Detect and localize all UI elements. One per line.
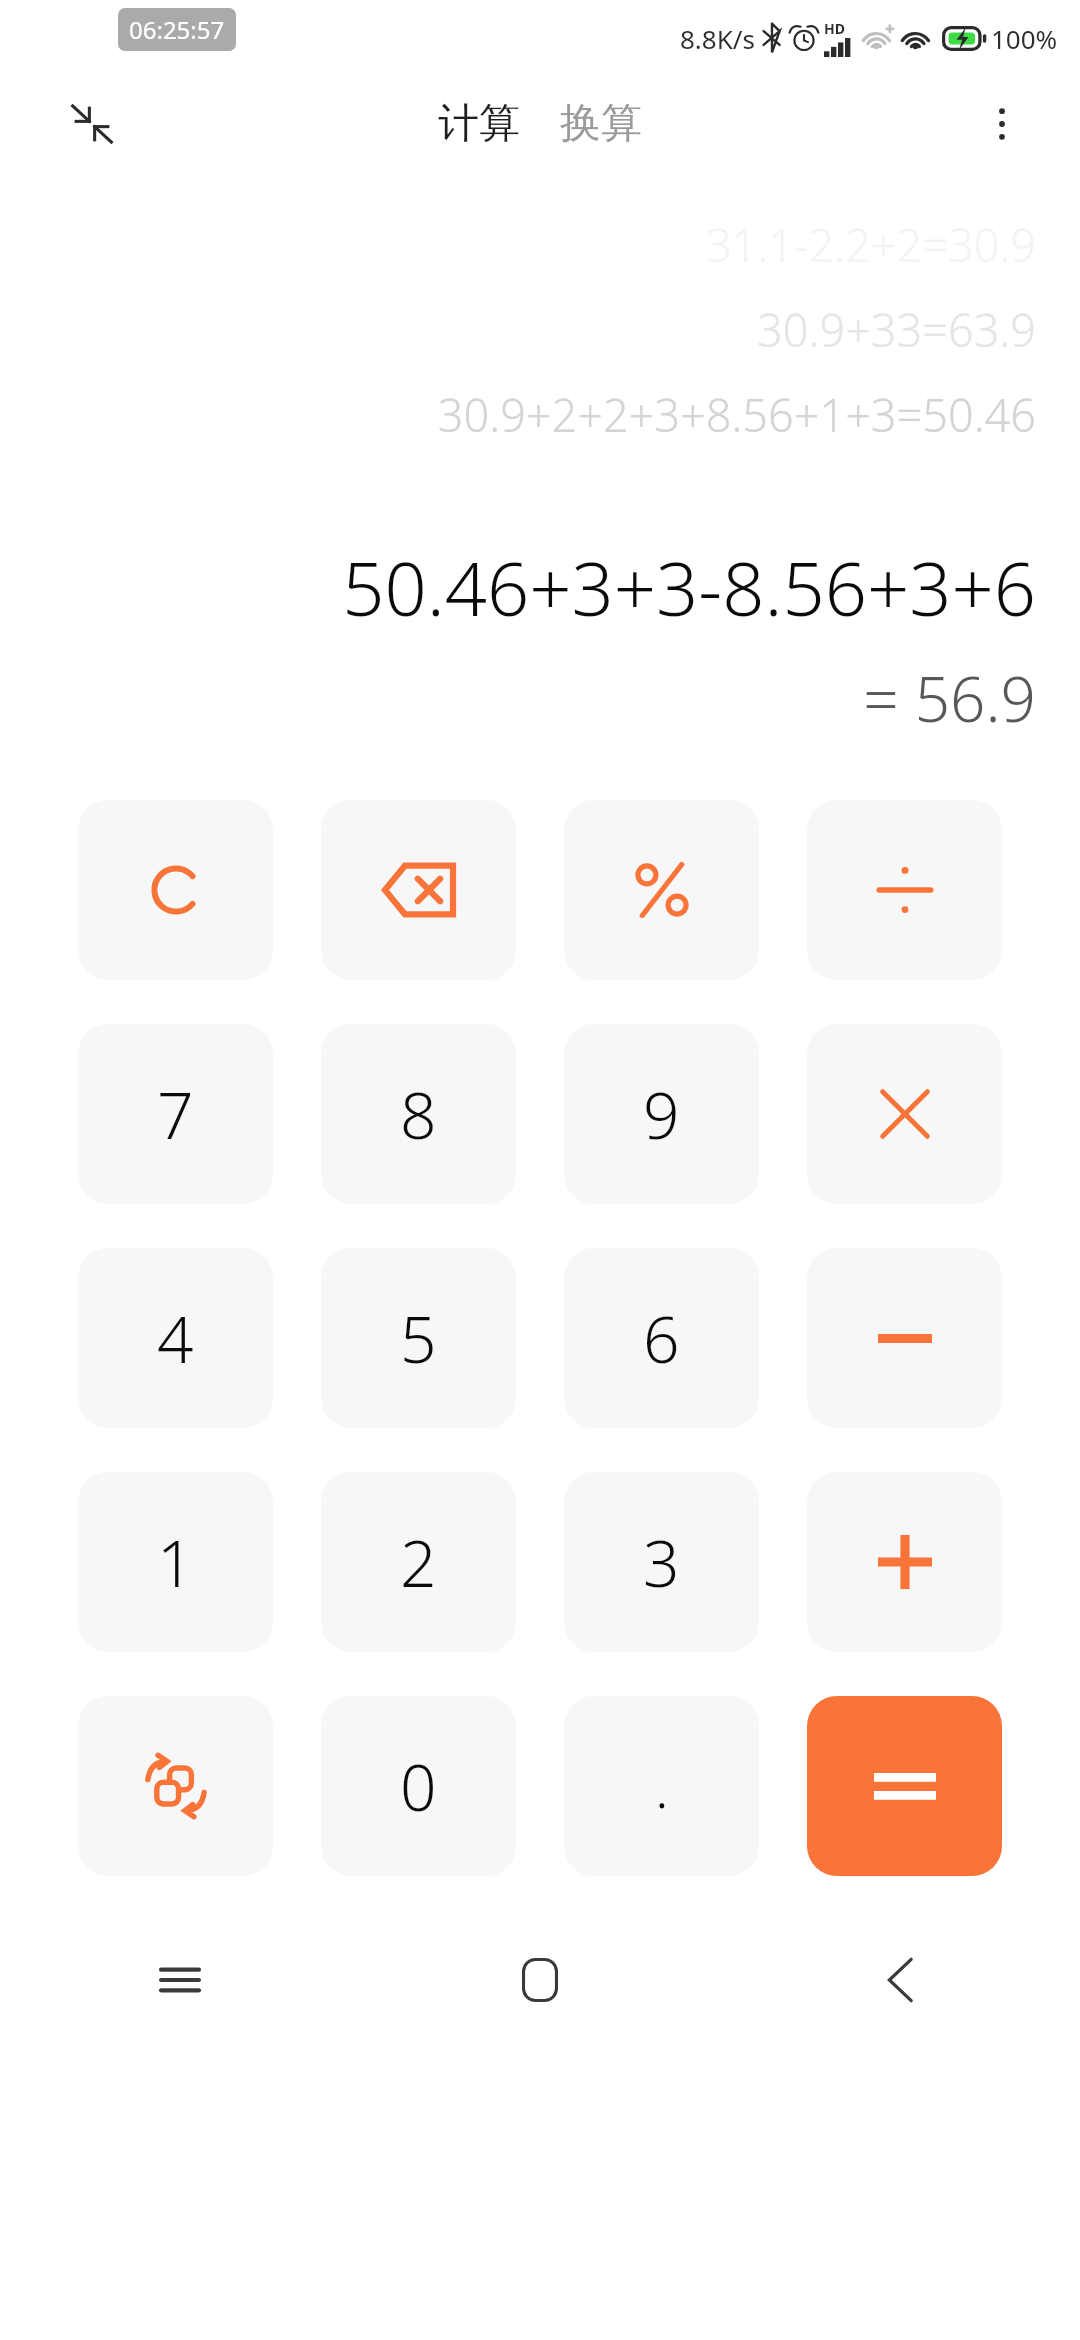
staticText: 31.1-2.2+2=30.9 xyxy=(705,214,1036,275)
button[interactable]: 4 xyxy=(78,1248,273,1428)
staticText: 6 xyxy=(643,1295,680,1382)
button[interactable]: Divide xyxy=(807,800,1002,980)
staticText: 8:25 xyxy=(132,24,182,58)
button[interactable]: 换算 xyxy=(548,88,654,160)
button[interactable]: 5 xyxy=(321,1248,516,1428)
staticText: 50.46+3+3-8.56+3+6 xyxy=(342,537,1036,638)
staticText: 8 xyxy=(400,1071,437,1158)
staticText: 30.9+33=63.9 xyxy=(757,299,1036,360)
button[interactable]: 6 xyxy=(564,1248,759,1428)
button[interactable]: 8 xyxy=(321,1024,516,1204)
button[interactable]: Percent xyxy=(564,800,759,980)
staticText: HD xyxy=(824,19,845,38)
staticText: = 56.9 xyxy=(863,656,1036,740)
staticText: 换算 xyxy=(560,98,642,150)
button[interactable]: Multiply xyxy=(807,1024,1002,1204)
button[interactable]: Collapse xyxy=(58,90,126,158)
button[interactable]: Minus xyxy=(807,1248,1002,1428)
button[interactable]: 7 xyxy=(78,1024,273,1204)
button[interactable]: More options xyxy=(968,90,1036,158)
button[interactable]: 3 xyxy=(564,1472,759,1652)
button[interactable]: Plus xyxy=(807,1472,1002,1652)
staticText: 7 xyxy=(157,1071,194,1158)
button[interactable]: 2 xyxy=(321,1472,516,1652)
staticText: 计算 xyxy=(438,98,520,150)
staticText: 30.9+2+2+3+8.56+1+3=50.46 xyxy=(437,384,1036,445)
staticText: 06:25:57 xyxy=(129,13,225,46)
staticText: 0 xyxy=(400,1743,437,1830)
staticText: 8.8K/s xyxy=(680,21,755,56)
staticText: 4 xyxy=(157,1295,194,1382)
button[interactable]: 计算 xyxy=(426,88,532,160)
button[interactable]: Equals xyxy=(807,1696,1002,1876)
button[interactable]: 0 xyxy=(321,1696,516,1876)
staticText: 2 xyxy=(400,1519,437,1606)
button[interactable]: 9 xyxy=(564,1024,759,1204)
staticText: 5 xyxy=(400,1295,437,1382)
staticText: . xyxy=(655,1748,669,1824)
button[interactable]: . xyxy=(564,1696,759,1876)
staticText: 100% xyxy=(991,21,1058,56)
staticText: 1 xyxy=(157,1519,194,1606)
button[interactable]: Home xyxy=(360,1918,720,2042)
staticText: 3 xyxy=(643,1519,680,1606)
button[interactable]: 1 xyxy=(78,1472,273,1652)
button[interactable]: Recents xyxy=(0,1918,360,2042)
button[interactable]: Clear xyxy=(78,800,273,980)
button[interactable]: Convert units xyxy=(78,1696,273,1876)
staticText: 9 xyxy=(643,1071,680,1158)
button[interactable]: Backspace xyxy=(321,800,516,980)
button[interactable]: Back xyxy=(720,1918,1080,2042)
